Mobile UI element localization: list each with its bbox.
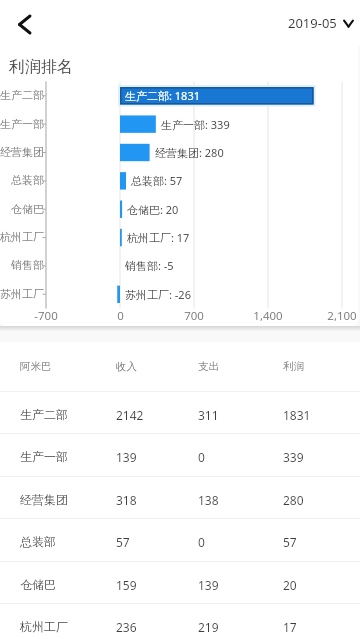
staticText: 17 [283, 619, 297, 635]
staticText: 收入 [116, 360, 137, 373]
staticText: 仓储巴 [20, 577, 56, 592]
staticText: 2019-05 [288, 14, 337, 32]
staticText: 2,100 [327, 308, 357, 324]
staticText: -700 [34, 308, 58, 324]
staticText: 57 [283, 534, 297, 550]
button[interactable]: Back [11, 10, 39, 38]
staticText: 1831 [283, 407, 311, 423]
staticText: 总装部: 57 [131, 173, 183, 188]
staticText: 311 [198, 407, 219, 423]
staticText: 700 [184, 308, 204, 324]
button[interactable]: 杭州工厂 [0, 604, 360, 639]
staticText: 利润排名 [9, 57, 73, 77]
staticText: 138 [198, 492, 219, 508]
staticText: 20 [283, 577, 297, 593]
staticText: 阿米巴 [20, 360, 52, 373]
staticText: 生产一部 [0, 117, 44, 131]
staticText: 生产一部 [20, 449, 68, 464]
staticText: 杭州工厂 [0, 230, 44, 244]
staticText: 利润 [283, 360, 304, 373]
staticText: 杭州工厂: 17 [127, 230, 190, 245]
staticText: 总装部 [11, 173, 44, 187]
staticText: 139 [116, 449, 137, 465]
staticText: 苏州工厂: -26 [125, 287, 191, 302]
staticText: 苏州工厂 [0, 287, 44, 301]
staticText: 0 [198, 449, 205, 465]
button[interactable]: 生产一部 [0, 434, 360, 476]
staticText: 1,400 [253, 308, 283, 324]
button[interactable]: 生产二部 [0, 392, 360, 433]
staticText: 总装部 [20, 534, 56, 549]
button[interactable]: 仓储巴 [0, 562, 360, 603]
staticText: 经营集团 [20, 492, 68, 507]
staticText: 仓储巴 [11, 202, 44, 216]
button[interactable]: 总装部 [0, 519, 360, 561]
staticText: 经营集团 [0, 145, 44, 159]
staticText: 139 [198, 577, 219, 593]
staticText: 经营集团: 280 [155, 145, 224, 160]
staticText: 生产一部: 339 [161, 117, 230, 132]
staticText: 生产二部 [0, 88, 44, 102]
staticText: 杭州工厂 [20, 619, 68, 634]
button[interactable]: 2019-05 [288, 14, 355, 32]
staticText: 318 [116, 492, 137, 508]
staticText: 236 [116, 619, 137, 635]
staticText: 销售部: -5 [125, 258, 174, 273]
staticText: 339 [283, 449, 304, 465]
staticText: 0 [198, 534, 205, 550]
staticText: 57 [116, 534, 130, 550]
staticText: 219 [198, 619, 219, 635]
staticText: 280 [283, 492, 304, 508]
button[interactable]: 经营集团 [0, 477, 360, 518]
staticText: 159 [116, 577, 137, 593]
staticText: 支出 [198, 360, 219, 373]
staticText: 销售部 [11, 258, 44, 272]
staticText: 生产二部: 1831 [125, 88, 200, 103]
staticText: 2142 [116, 407, 144, 423]
staticText: 0 [117, 308, 124, 324]
staticText: 生产二部 [20, 407, 68, 422]
staticText: 仓储巴: 20 [127, 202, 179, 217]
